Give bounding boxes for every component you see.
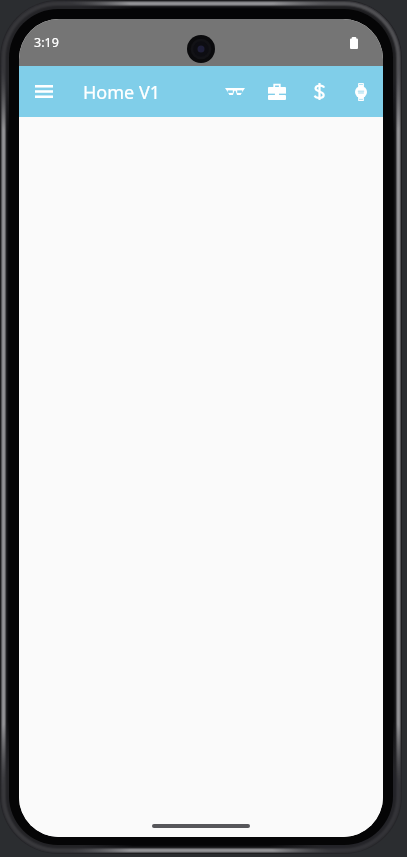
button[interactable]: Watch — [340, 66, 382, 117]
button[interactable]: Home — [152, 824, 250, 828]
button[interactable]: Money — [298, 66, 340, 117]
button[interactable]: Open navigation menu — [30, 66, 57, 117]
staticText: 3:19 — [34, 34, 59, 51]
staticText: Home V1 — [83, 80, 160, 105]
button[interactable]: Glasses — [214, 66, 256, 117]
button[interactable]: Work — [256, 66, 298, 117]
